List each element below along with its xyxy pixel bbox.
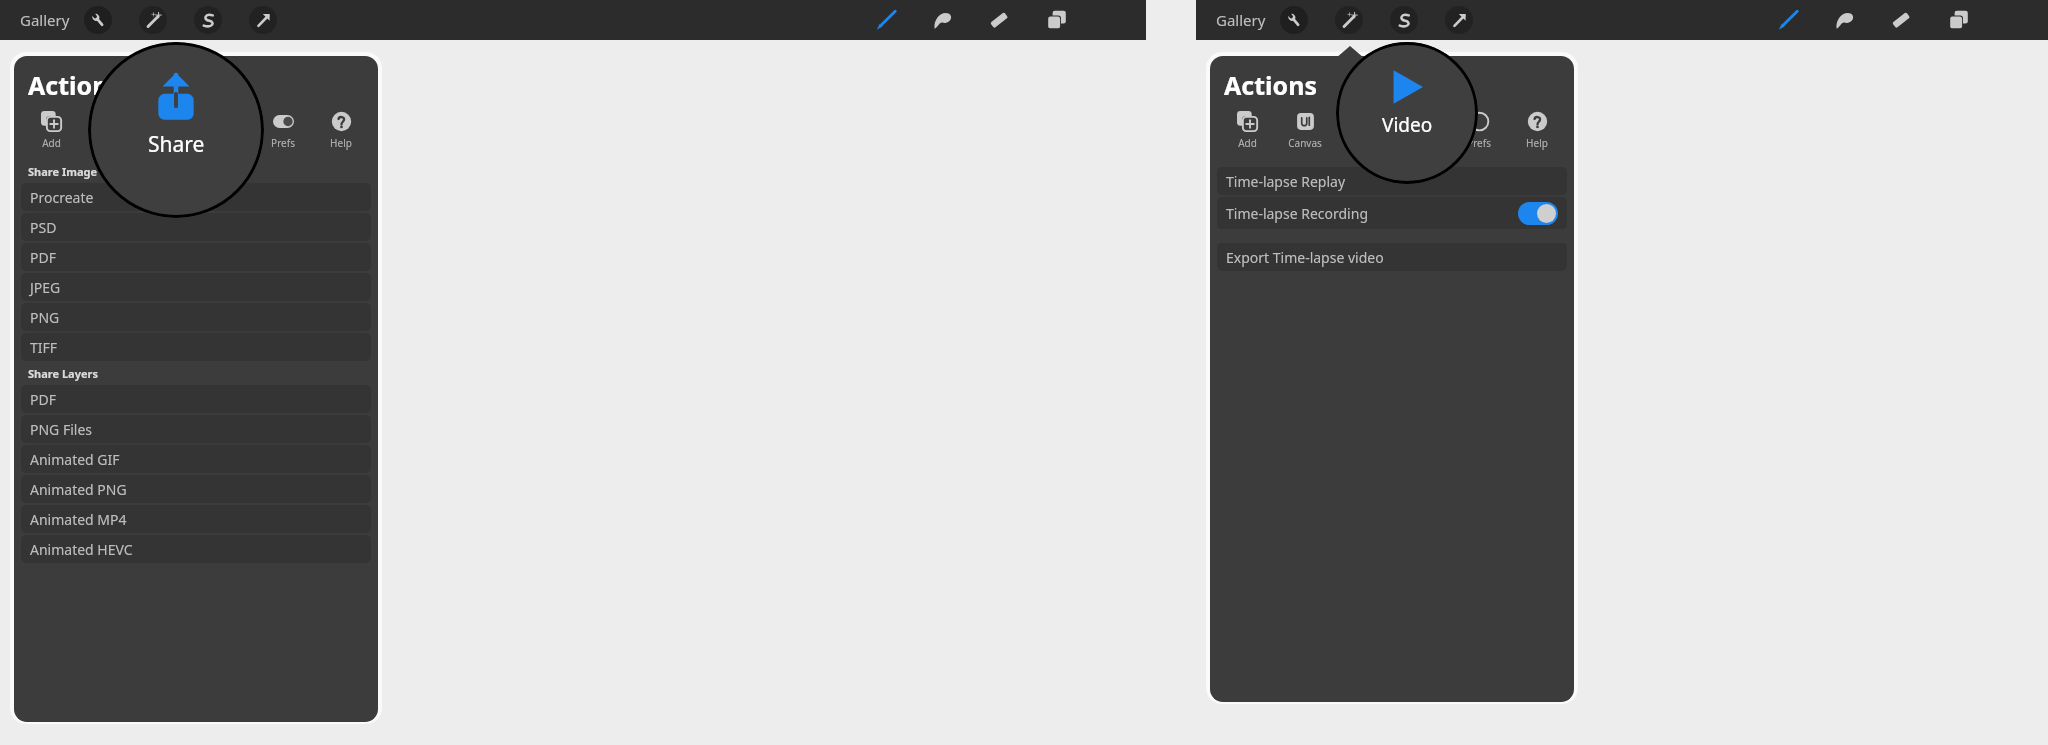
staticText: Add <box>42 136 61 150</box>
button[interactable]: Help <box>312 108 370 160</box>
staticText: PNG <box>30 308 60 327</box>
staticText: TIFF <box>30 338 58 357</box>
button[interactable]: Canvas <box>80 108 138 160</box>
button[interactable]: Animated GIF <box>21 445 371 473</box>
button[interactable]: Tool <box>1041 4 1073 36</box>
button[interactable]: Share <box>1334 108 1392 160</box>
button[interactable]: Tool <box>927 4 959 36</box>
staticText: Gallery <box>1216 10 1266 30</box>
button[interactable]: Video <box>196 108 254 160</box>
button[interactable]: Canvas <box>1276 108 1334 160</box>
staticText: Share Layers <box>28 366 98 381</box>
staticText: Video <box>1382 112 1433 138</box>
staticText: Canvas <box>92 136 126 150</box>
button[interactable]: Tool <box>1943 4 1975 36</box>
staticText: Help <box>1526 136 1548 150</box>
staticText: Gallery <box>20 10 70 30</box>
button[interactable]: Add <box>22 108 80 160</box>
button[interactable]: Gallery <box>1210 0 1272 40</box>
staticText: JPEG <box>30 278 61 297</box>
button[interactable]: Tool <box>983 4 1015 36</box>
button[interactable]: Tool <box>194 6 222 34</box>
button[interactable]: Tool <box>1335 6 1363 34</box>
staticText: Add <box>1238 136 1257 150</box>
staticText: Time-lapse Replay <box>1226 172 1346 191</box>
button[interactable]: PDF <box>21 243 371 271</box>
staticText: Animated MP4 <box>30 510 127 529</box>
button[interactable]: Tool <box>1885 4 1917 36</box>
staticText: Actions <box>28 68 121 102</box>
button[interactable]: PNG Files <box>21 415 371 443</box>
button[interactable]: JPEG <box>21 273 371 301</box>
button[interactable]: Tool <box>1280 6 1308 34</box>
staticText: Share <box>148 130 205 159</box>
staticText: Animated HEVC <box>30 540 133 559</box>
button[interactable]: Time-lapse Recording <box>1217 197 1567 229</box>
staticText: Canvas <box>1288 136 1322 150</box>
button[interactable]: Animated MP4 <box>21 505 371 533</box>
staticText: Animated GIF <box>30 450 120 469</box>
staticText: PDF <box>30 390 56 409</box>
button[interactable]: Animated PNG <box>21 475 371 503</box>
button[interactable]: Tool <box>1772 4 1804 36</box>
button[interactable]: PNG <box>21 303 371 331</box>
button[interactable]: Procreate <box>21 183 371 211</box>
button[interactable]: Tool <box>84 6 112 34</box>
button[interactable]: Share <box>138 108 196 160</box>
button[interactable]: PDF <box>21 385 371 413</box>
button[interactable]: Export Time-lapse video <box>1217 243 1567 271</box>
button[interactable]: Add <box>1218 108 1276 160</box>
staticText: PNG Files <box>30 420 93 439</box>
button[interactable]: Gallery <box>14 0 76 40</box>
button[interactable]: Tool <box>1829 4 1861 36</box>
staticText: Prefs <box>1467 136 1491 150</box>
staticText: Actions <box>1224 68 1317 102</box>
button[interactable]: Prefs <box>254 108 312 160</box>
button[interactable]: Tool <box>139 6 167 34</box>
button[interactable]: Video <box>1392 108 1450 160</box>
staticText: Time-lapse Recording <box>1226 204 1368 223</box>
button[interactable]: Tool <box>1445 6 1473 34</box>
button[interactable]: Help <box>1508 108 1566 160</box>
button[interactable]: Tool <box>1390 6 1418 34</box>
button[interactable]: TIFF <box>21 333 371 361</box>
staticText: Export Time-lapse video <box>1226 248 1384 267</box>
staticText: Share <box>154 136 181 150</box>
staticText: Procreate <box>30 188 94 207</box>
button[interactable]: Prefs <box>1450 108 1508 160</box>
button[interactable]: Tool <box>249 6 277 34</box>
button[interactable]: PSD <box>21 213 371 241</box>
button[interactable]: Time-lapse Replay <box>1217 167 1567 195</box>
button[interactable]: Tool <box>870 4 902 36</box>
staticText: PSD <box>30 218 57 237</box>
staticText: Prefs <box>271 136 295 150</box>
staticText: Share Image <box>28 164 98 179</box>
button[interactable]: Animated HEVC <box>21 535 371 563</box>
staticText: Help <box>330 136 352 150</box>
staticText: Animated PNG <box>30 480 127 499</box>
staticText: PDF <box>30 248 56 267</box>
